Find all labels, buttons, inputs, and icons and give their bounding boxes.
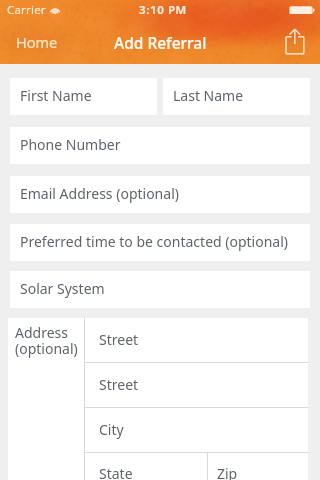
staticText: Add Referral — [114, 32, 207, 53]
staticText: Solar System — [20, 279, 105, 298]
button[interactable]: City — [84, 408, 308, 452]
staticText: City — [99, 420, 124, 439]
staticText: Phone Number — [20, 135, 121, 154]
staticText: First Name — [20, 86, 92, 105]
staticText: 3:10 PM — [139, 2, 187, 18]
button[interactable]: State — [84, 453, 207, 480]
button[interactable]: Solar System — [10, 271, 310, 308]
button[interactable]: First Name — [10, 78, 157, 115]
staticText: Home — [16, 32, 58, 52]
button[interactable]: Phone Number — [10, 127, 310, 164]
button[interactable]: Address (optional) — [8, 318, 84, 363]
staticText: Street — [99, 330, 139, 349]
staticText: Preferred time to be contacted (optional… — [20, 232, 289, 251]
staticText: State — [99, 464, 133, 480]
button[interactable]: Email Address (optional) — [10, 176, 310, 213]
staticText: Email Address (optional) — [20, 184, 179, 203]
staticText: Zip — [217, 464, 238, 480]
button[interactable]: Zip — [208, 453, 308, 480]
button[interactable]: Home — [0, 26, 70, 58]
button[interactable]: Street — [84, 363, 308, 407]
button[interactable]: Street — [84, 318, 308, 362]
staticText: Carrier — [7, 2, 46, 18]
staticText: Address (optional) — [15, 323, 78, 358]
staticText: Street — [99, 375, 139, 394]
staticText: Last Name — [173, 86, 244, 105]
button[interactable]: Preferred time to be contacted (optional… — [10, 224, 310, 261]
button[interactable]: Last Name — [163, 78, 310, 115]
button[interactable]: Share — [278, 23, 312, 57]
